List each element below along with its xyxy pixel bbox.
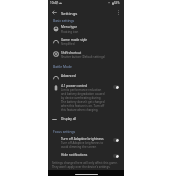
staticText: 4.1 power control [61, 84, 88, 88]
button[interactable]: Turn off Adaptive brightness [48, 135, 124, 153]
staticText: Game mode style [61, 38, 88, 42]
staticText: Shutter button (Default settings) [61, 55, 105, 59]
staticText: Display all [61, 117, 77, 121]
button[interactable]: Advanced [48, 71, 124, 81]
staticText: Basic settings [53, 18, 75, 22]
staticText: Turn off Adaptive brightness [61, 137, 104, 141]
staticText: Settings [61, 10, 78, 16]
button[interactable]: Menu type [48, 23, 124, 35]
staticText: 10:47 [50, 1, 58, 5]
staticText: Advanced [61, 74, 76, 78]
staticText: Limits performance reduction and battery… [61, 88, 105, 100]
button[interactable]: Game mode style [48, 36, 124, 48]
button[interactable]: More options [114, 8, 122, 16]
button[interactable]: Hide notifications [48, 152, 124, 163]
button[interactable]: Toggle Turn off Adaptive brightness [113, 138, 119, 142]
staticText: 53% [114, 1, 120, 5]
staticText: Turn off Adaptive brightness to avoid di… [61, 141, 111, 149]
staticText: Settings changed here will only affect t… [52, 161, 122, 169]
staticText: Menu type [61, 25, 77, 29]
button[interactable]: Toggle Hide notifications [113, 154, 119, 158]
staticText: Hide notifications [61, 153, 88, 157]
staticText: Shift shortcut [61, 51, 82, 55]
staticText: Simplified [61, 42, 75, 46]
staticText: Focus settings [53, 129, 76, 133]
button[interactable]: Toggle 4.1 power control [113, 85, 119, 89]
staticText: The battery doesn't get charged when thi… [61, 100, 105, 112]
button[interactable]: Display all [48, 115, 124, 125]
staticText: Floating icon [61, 30, 79, 34]
staticText: Battle Mode [53, 64, 72, 68]
button[interactable]: Shift shortcut [48, 49, 124, 62]
button[interactable]: 4.1 power control [48, 83, 124, 115]
button[interactable]: Back [50, 8, 59, 17]
